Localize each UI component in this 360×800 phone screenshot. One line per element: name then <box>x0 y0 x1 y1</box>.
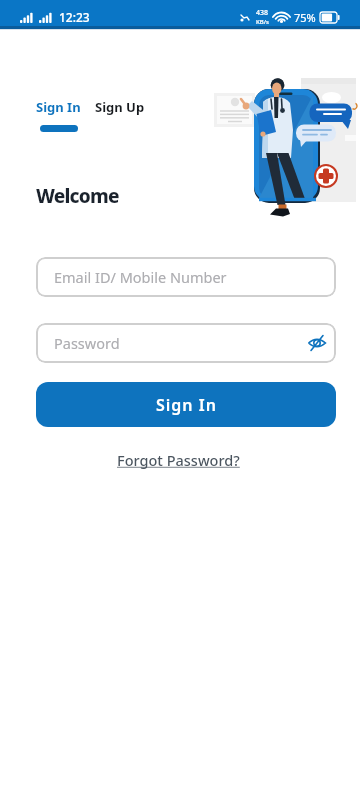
staticText: Sign In <box>36 98 81 116</box>
staticText: 12:23 <box>59 9 90 25</box>
button[interactable]: Forgot Password? <box>117 450 240 470</box>
staticText: Sign In <box>156 394 217 416</box>
staticText: Sign Up <box>95 98 145 116</box>
staticText: 438 <box>256 8 269 18</box>
staticText: KB/s <box>256 18 269 26</box>
staticText: Forgot Password? <box>117 450 240 470</box>
button[interactable]: Sign In <box>36 382 336 427</box>
button[interactable]: Sign Up <box>95 98 145 132</box>
staticText: 75% <box>294 10 316 25</box>
button[interactable]: Sign In <box>36 98 81 132</box>
staticText: Password <box>54 333 120 353</box>
staticText: Email ID/ Mobile Number <box>54 267 227 287</box>
button[interactable]: Password <box>36 323 336 363</box>
staticText: Welcome <box>36 183 119 209</box>
button[interactable]: Email ID/ Mobile Number <box>36 257 336 297</box>
